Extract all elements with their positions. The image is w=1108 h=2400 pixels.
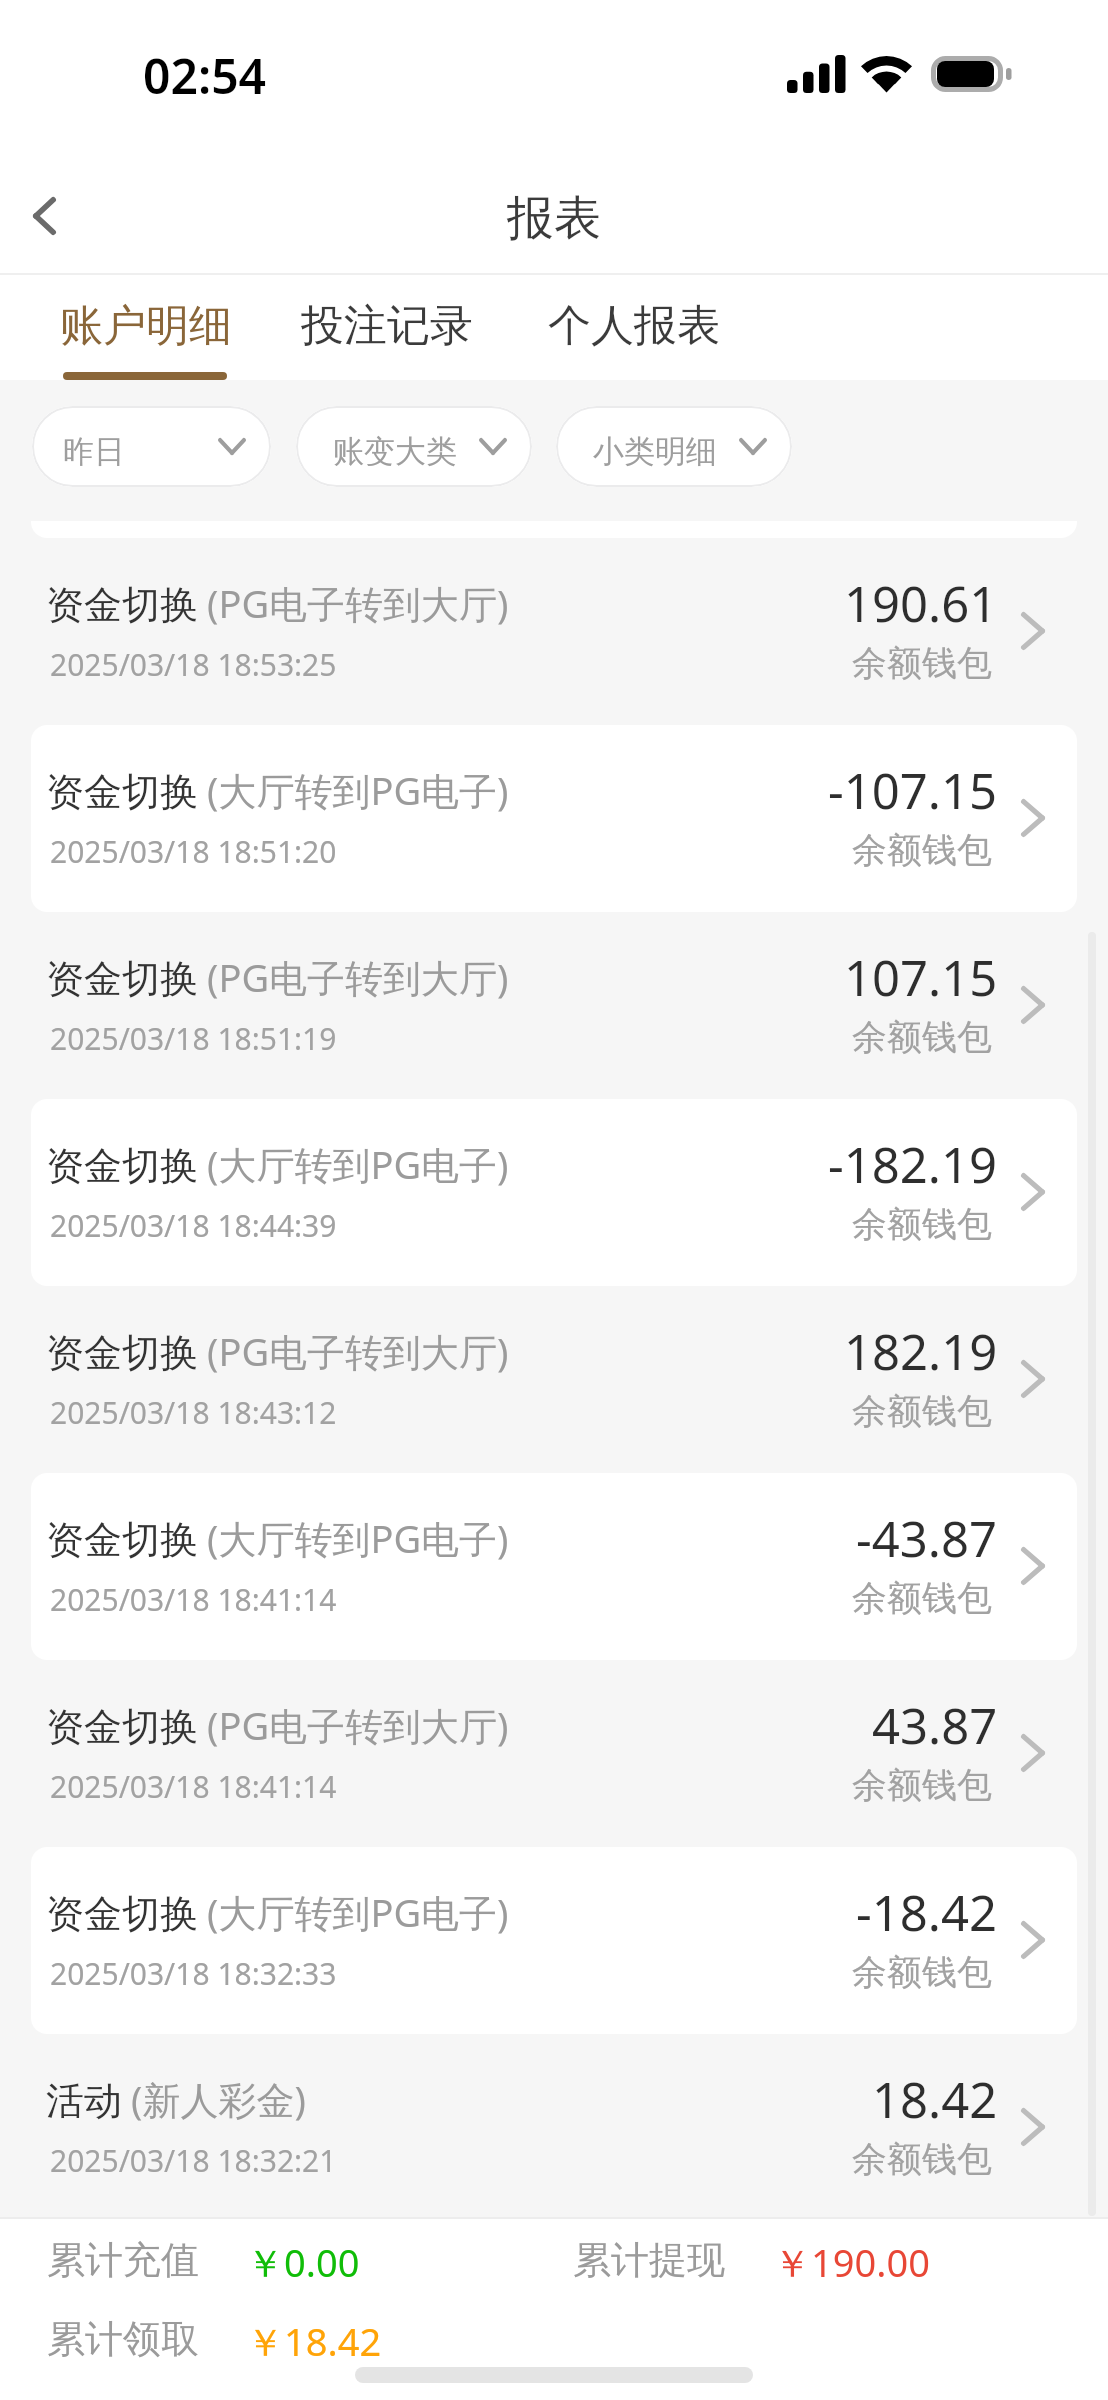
staticText: 2025/03/18 18:43:12 [50, 1392, 337, 1433]
staticText: 2025/03/18 18:32:21 [50, 2140, 337, 2181]
staticText: 43.87 [872, 1692, 998, 1759]
staticText: 2025/03/18 18:51:20 [50, 831, 337, 872]
staticText: ￥0.00 [246, 2236, 360, 2288]
staticText: 累计领取 [47, 2315, 199, 2363]
staticText: 余额钱包 [852, 2137, 992, 2181]
staticText: -18.42 [856, 1879, 998, 1946]
staticText: 2025/03/18 18:44:39 [50, 1205, 337, 1246]
staticText: 资金切换 [46, 581, 198, 629]
staticText: 18.42 [872, 2066, 998, 2133]
staticText: (大厅转到PG电子) [207, 1512, 509, 1564]
staticText: 资金切换 [46, 1703, 198, 1751]
staticText: 累计充值 [47, 2236, 199, 2284]
staticText: ￥190.00 [773, 2236, 930, 2288]
staticText: 107.15 [844, 944, 998, 1011]
staticText: (PG电子转到大厅) [207, 1325, 509, 1377]
staticText: ￥18.42 [246, 2315, 382, 2367]
staticText: -43.87 [856, 1505, 998, 1572]
staticText: 资金切换 [46, 1890, 198, 1938]
button[interactable]: 小类明细 [556, 406, 792, 487]
button[interactable]: 资金切换 [0, 1473, 1108, 1660]
staticText: 账户明细 [60, 299, 232, 353]
button[interactable]: 资金切换 [0, 1847, 1108, 2034]
staticText: -107.15 [828, 757, 998, 824]
staticText: (大厅转到PG电子) [207, 1886, 509, 1938]
staticText: 余额钱包 [852, 1015, 992, 1059]
staticText: 2025/03/18 18:51:19 [50, 1018, 337, 1059]
staticText: 资金切换 [46, 1516, 198, 1564]
staticText: 2025/03/18 18:41:14 [50, 1766, 337, 1807]
staticText: (PG电子转到大厅) [207, 951, 509, 1003]
button[interactable]: 投注记录 [278, 275, 497, 380]
staticText: 账变大类 [333, 432, 457, 471]
staticText: 余额钱包 [852, 1763, 992, 1807]
staticText: 昨日 [63, 432, 125, 471]
staticText: 资金切换 [46, 768, 198, 816]
staticText: -182.19 [828, 1131, 998, 1198]
staticText: 190.61 [844, 570, 998, 637]
staticText: 累计提现 [573, 2236, 725, 2284]
staticText: 02:54 [143, 43, 267, 108]
staticText: 182.19 [844, 1318, 998, 1385]
button[interactable]: 资金切换 [0, 1286, 1108, 1473]
staticText: (PG电子转到大厅) [207, 577, 509, 629]
staticText: 余额钱包 [852, 1950, 992, 1994]
button[interactable]: Back [6, 156, 82, 260]
button[interactable]: 资金切换 [0, 725, 1108, 912]
staticText: 活动 [46, 2077, 122, 2125]
staticText: (新人彩金) [131, 2073, 306, 2125]
button[interactable]: 个人报表 [525, 275, 735, 380]
button[interactable]: 账变大类 [296, 406, 532, 487]
staticText: 2025/03/18 18:41:14 [50, 1579, 337, 1620]
button[interactable]: 资金切换 [0, 1099, 1108, 1286]
staticText: 投注记录 [301, 299, 473, 353]
staticText: 个人报表 [548, 299, 720, 353]
button[interactable]: 活动 [0, 2034, 1108, 2217]
button[interactable]: 资金切换 [0, 1660, 1108, 1847]
staticText: 报表 [507, 189, 601, 248]
staticText: (大厅转到PG电子) [207, 764, 509, 816]
button[interactable]: 账户明细 [37, 275, 253, 380]
staticText: 小类明细 [593, 432, 717, 471]
staticText: 资金切换 [46, 1329, 198, 1377]
button[interactable]: 昨日 [32, 406, 271, 487]
staticText: 余额钱包 [852, 1389, 992, 1433]
staticText: 资金切换 [46, 955, 198, 1003]
staticText: (PG电子转到大厅) [207, 1699, 509, 1751]
staticText: 2025/03/18 18:53:25 [50, 644, 337, 685]
staticText: 余额钱包 [852, 828, 992, 872]
staticText: (大厅转到PG电子) [207, 1138, 509, 1190]
button[interactable]: 资金切换 [0, 538, 1108, 725]
staticText: 余额钱包 [852, 1576, 992, 1620]
staticText: 余额钱包 [852, 641, 992, 685]
staticText: 2025/03/18 18:32:33 [50, 1953, 337, 1994]
staticText: 余额钱包 [852, 1202, 992, 1246]
staticText: 资金切换 [46, 1142, 198, 1190]
button[interactable]: 资金切换 [0, 912, 1108, 1099]
